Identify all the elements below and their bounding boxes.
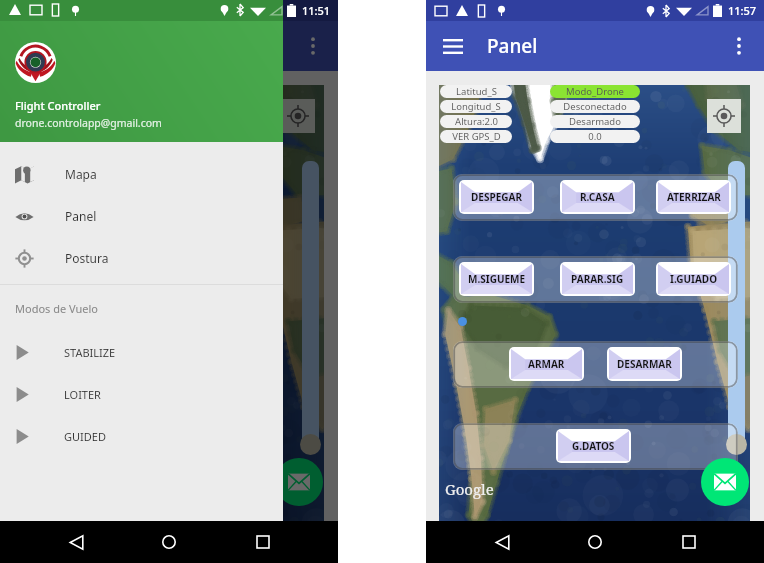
staticText: Panel [65, 208, 97, 224]
button[interactable]: Desarmado [550, 115, 640, 128]
staticText: ATERRIZAR [667, 190, 721, 204]
button[interactable]: DESPEGAR [461, 182, 532, 212]
staticText: Altura:2.0 [455, 115, 498, 128]
staticText: M.SIGUEME [468, 272, 526, 286]
button[interactable]: Home [151, 524, 187, 560]
button[interactable]: Back [58, 524, 94, 560]
staticText: Panel [487, 33, 538, 59]
button[interactable]: Postura [0, 237, 283, 279]
button[interactable]: Altura:2.0 [440, 115, 512, 128]
staticText: Mapa [65, 166, 97, 182]
staticText: STABILIZE [64, 345, 116, 360]
button[interactable]: GUIDED [0, 415, 283, 457]
button[interactable]: M.SIGUEME [461, 264, 532, 294]
staticText: Desarmado [569, 115, 621, 128]
button[interactable]: Latitud_S [440, 85, 512, 98]
button[interactable]: Back [484, 524, 520, 560]
button[interactable]: 0.0 [550, 130, 640, 143]
staticText: drone.controlapp@gmail.com [15, 116, 162, 130]
button[interactable]: Mapa [0, 153, 283, 195]
button[interactable]: STABILIZE [0, 331, 283, 373]
button[interactable]: PARAR.SIG [562, 264, 633, 294]
button[interactable]: Modo_Drone [550, 85, 640, 98]
staticText: Flight Controller [15, 98, 101, 113]
staticText: Modo_Drone [566, 85, 624, 98]
button[interactable]: ATERRIZAR [658, 182, 729, 212]
staticText: R.CASA [580, 190, 615, 204]
staticText: G.DATOS [572, 439, 615, 453]
button[interactable]: G.DATOS [558, 431, 629, 461]
button[interactable]: VER GPS_D [440, 130, 512, 143]
button[interactable]: Open navigation drawer [439, 32, 467, 60]
staticText: 11:57 [728, 3, 757, 18]
button[interactable]: Desconectado [550, 100, 640, 113]
staticText: LOITER [64, 387, 101, 402]
button[interactable]: DESARMAR [609, 349, 680, 379]
staticText: GUIDED [64, 429, 106, 444]
button[interactable]: Recent apps [671, 524, 707, 560]
staticText: Desconectado [563, 100, 627, 113]
staticText: Modos de Vuelo [15, 301, 98, 316]
button[interactable]: Recent apps [245, 524, 281, 560]
button[interactable]: Send message [701, 458, 749, 506]
staticText: Longitud_S [451, 100, 501, 113]
staticText: ARMAR [528, 357, 565, 371]
button[interactable]: LOITER [0, 373, 283, 415]
staticText: PARAR.SIG [571, 272, 624, 286]
staticText: 0.0 [588, 130, 602, 143]
staticText: Latitud_S [456, 85, 497, 98]
staticText: Google [445, 479, 494, 499]
staticText: I.GUIADO [670, 272, 718, 286]
button[interactable]: Home [577, 524, 613, 560]
button[interactable]: R.CASA [562, 182, 633, 212]
staticText: DESARMAR [617, 357, 672, 371]
button[interactable]: ARMAR [511, 349, 582, 379]
button[interactable]: Longitud_S [440, 100, 512, 113]
button[interactable]: I.GUIADO [658, 264, 729, 294]
button[interactable]: Panel [0, 195, 283, 237]
staticText: 11:51 [302, 3, 331, 18]
button[interactable]: My location [707, 99, 741, 133]
staticText: Postura [65, 250, 109, 266]
staticText: DESPEGAR [471, 190, 522, 204]
staticText: VER GPS_D [452, 130, 501, 143]
button[interactable]: More options [726, 33, 752, 59]
